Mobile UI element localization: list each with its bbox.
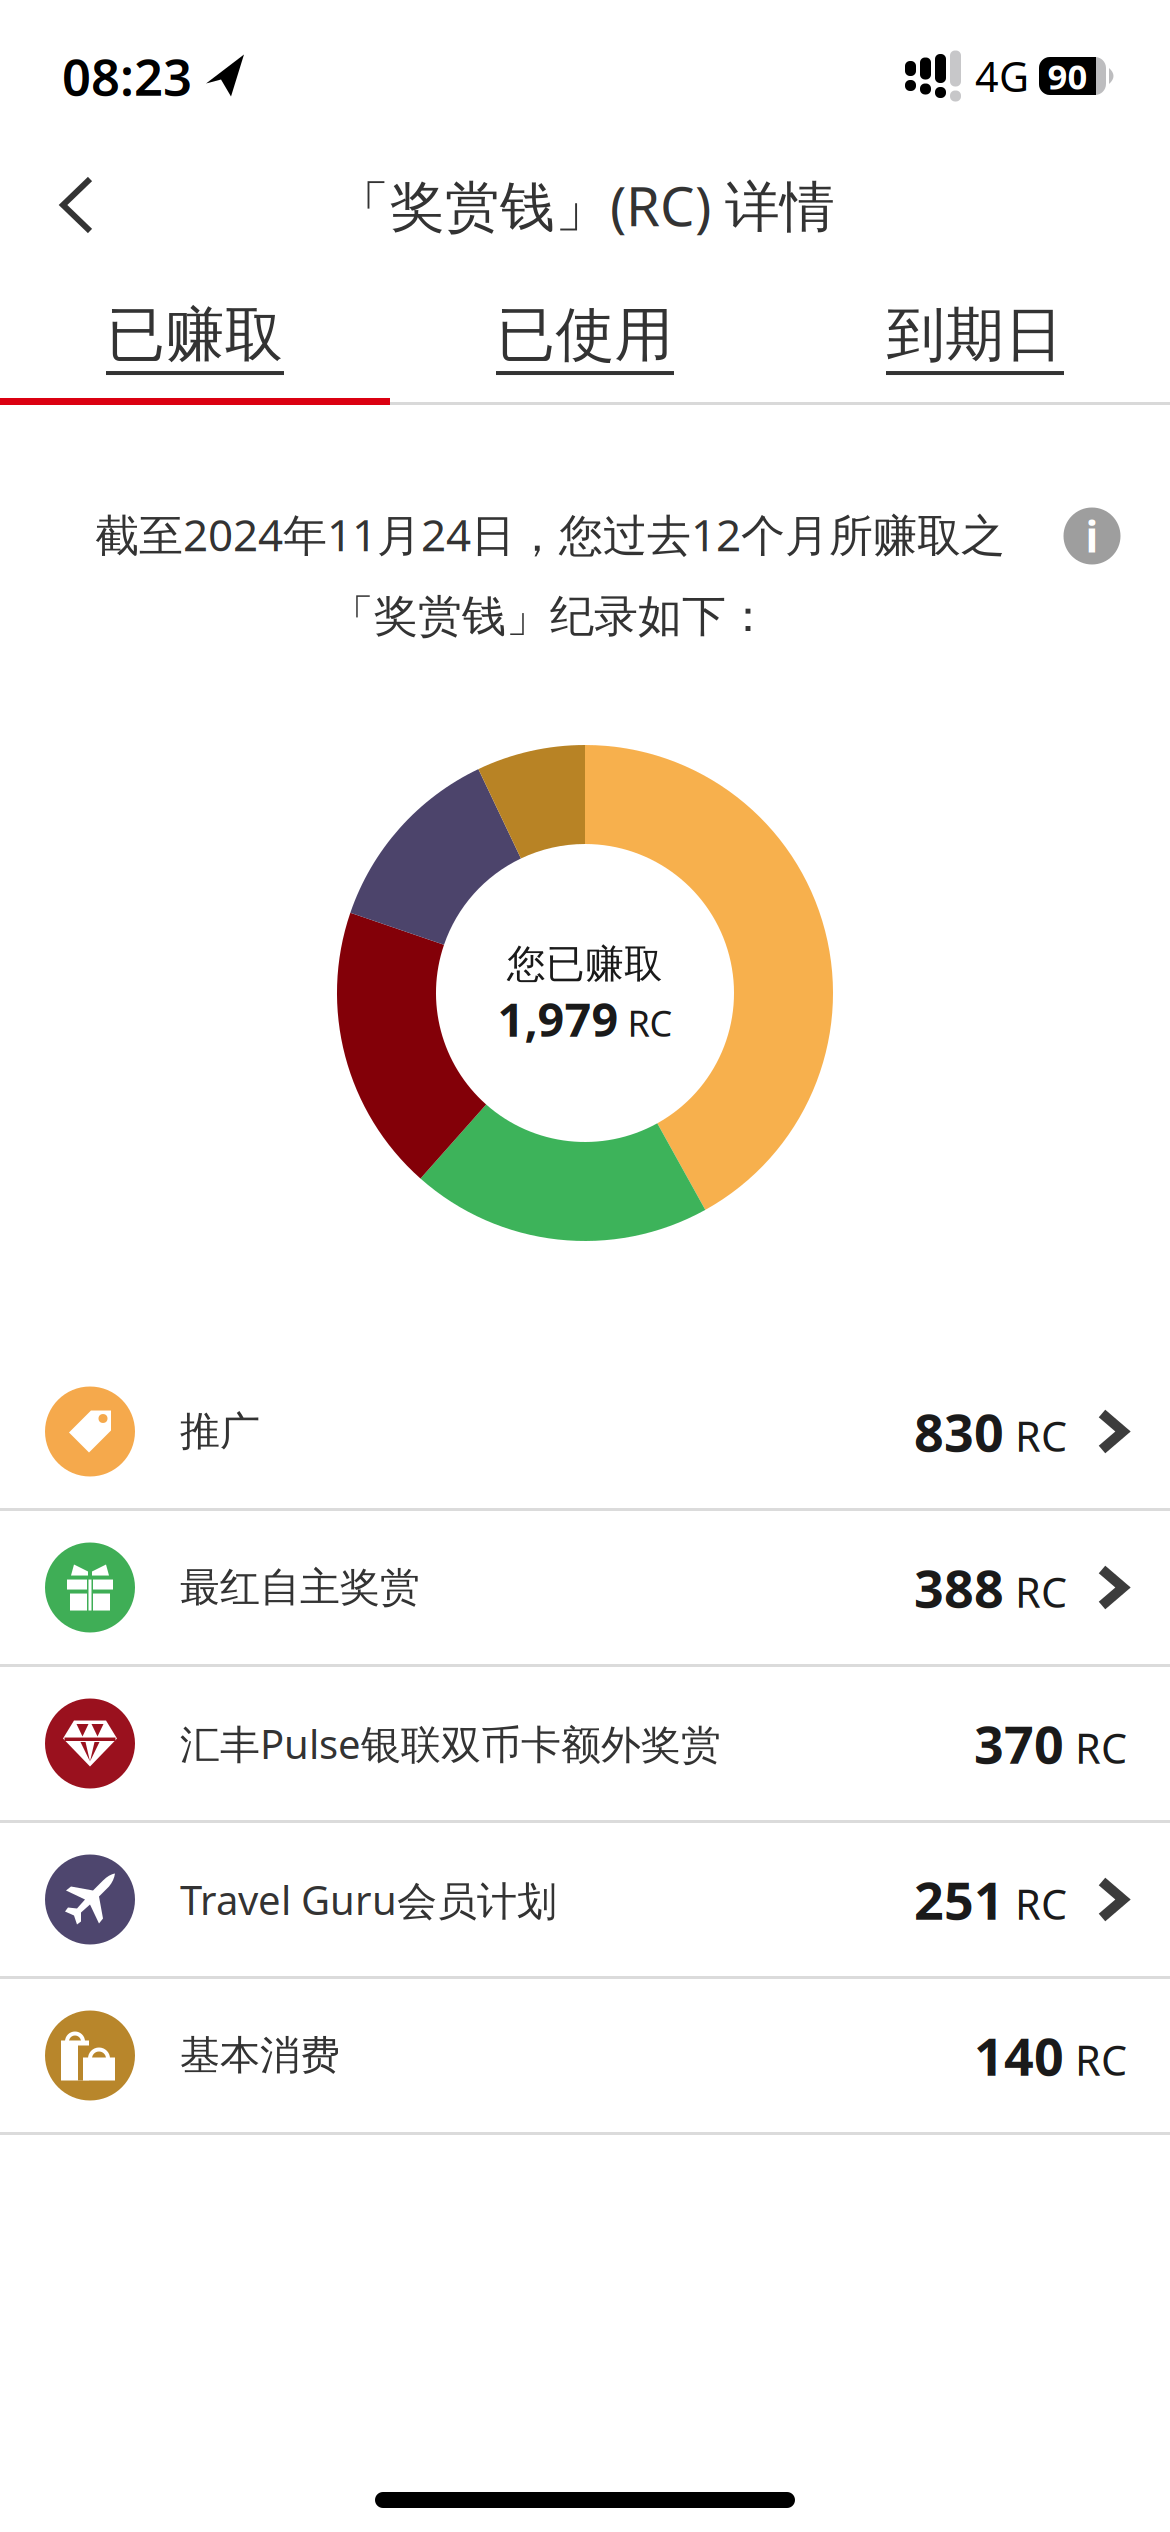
button[interactable]: 汇丰Pulse银联双币卡额外奖赏 xyxy=(0,1667,1170,1820)
button[interactable]: 已赚取 xyxy=(0,280,390,370)
staticText: 830 RC xyxy=(914,1397,1067,1466)
staticText: 已赚取 xyxy=(106,299,283,371)
staticText: 您已赚取 xyxy=(507,940,663,988)
staticText: 到期日 xyxy=(886,299,1063,371)
button[interactable]: 基本消费 xyxy=(0,1979,1170,2132)
staticText: 1,979 RC xyxy=(497,988,672,1050)
staticText: 370 RC xyxy=(974,1709,1127,1778)
staticText: Travel Guru会员计划 xyxy=(180,1873,557,1926)
staticText: 已使用 xyxy=(496,299,673,371)
staticText: 截至2024年11月24日，您过去12个月所赚取之 xyxy=(95,505,1005,563)
staticText: 251 RC xyxy=(914,1865,1067,1934)
staticText: 「奖赏钱」纪录如下： xyxy=(330,589,770,643)
staticText: 汇丰Pulse银联双币卡额外奖赏 xyxy=(180,1717,721,1770)
staticText: 08:23 xyxy=(62,42,192,110)
staticText: 最红自主奖赏 xyxy=(180,1563,420,1612)
button[interactable]: 已使用 xyxy=(390,280,780,370)
staticText: 90 xyxy=(1047,53,1087,99)
staticText: i xyxy=(1085,508,1098,564)
button[interactable]: More information xyxy=(1063,507,1120,564)
staticText: 388 RC xyxy=(914,1553,1067,1622)
staticText: 4G xyxy=(975,49,1029,103)
button[interactable]: Back xyxy=(0,177,123,233)
button[interactable]: 最红自主奖赏 xyxy=(0,1511,1170,1664)
button[interactable]: 到期日 xyxy=(780,280,1170,370)
button[interactable]: Travel Guru会员计划 xyxy=(0,1823,1170,1976)
button[interactable]: 推广 xyxy=(0,1355,1170,1508)
staticText: 「奖赏钱」(RC) 详情 xyxy=(335,169,835,241)
staticText: 基本消费 xyxy=(180,2031,340,2080)
staticText: 推广 xyxy=(180,1407,260,1456)
staticText: 140 RC xyxy=(974,2021,1127,2090)
